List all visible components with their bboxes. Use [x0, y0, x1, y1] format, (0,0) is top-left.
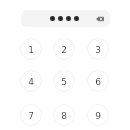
staticText: 2 [61, 45, 67, 55]
button[interactable]: 4 [20, 70, 42, 92]
staticText: 4 [28, 77, 34, 87]
button[interactable]: 8 [53, 104, 75, 126]
staticText: 6 [95, 77, 101, 87]
button[interactable]: 2 [53, 38, 75, 60]
button[interactable] [21, 10, 110, 27]
staticText: 1 [28, 45, 34, 55]
staticText: 7 [28, 111, 34, 121]
staticText: 8 [61, 111, 67, 121]
button[interactable]: Backspace [93, 12, 107, 26]
button[interactable]: 9 [87, 104, 109, 126]
button[interactable]: 5 [53, 70, 75, 92]
button[interactable]: 3 [87, 38, 109, 60]
button[interactable]: 7 [20, 104, 42, 126]
staticText: 5 [61, 77, 67, 87]
staticText: 9 [95, 111, 101, 121]
button[interactable]: 6 [87, 70, 109, 92]
button[interactable]: 1 [20, 38, 42, 60]
staticText: 3 [95, 45, 101, 55]
